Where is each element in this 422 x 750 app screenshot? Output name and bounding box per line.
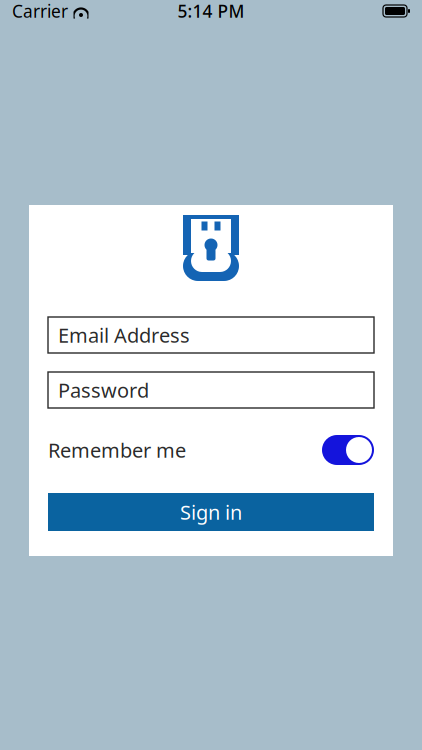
staticText: Remember me bbox=[48, 437, 186, 463]
staticText: Password bbox=[58, 377, 149, 403]
staticText: Email Address bbox=[58, 322, 190, 348]
staticText: Carrier bbox=[12, 0, 68, 22]
button[interactable]: Password bbox=[48, 372, 374, 408]
staticText: Sign in bbox=[180, 499, 242, 525]
button[interactable]: Email Address bbox=[48, 317, 374, 353]
staticText: 5:14 PM bbox=[177, 0, 244, 22]
button[interactable]: Remember me bbox=[322, 435, 374, 465]
button[interactable]: Sign in bbox=[48, 493, 374, 531]
